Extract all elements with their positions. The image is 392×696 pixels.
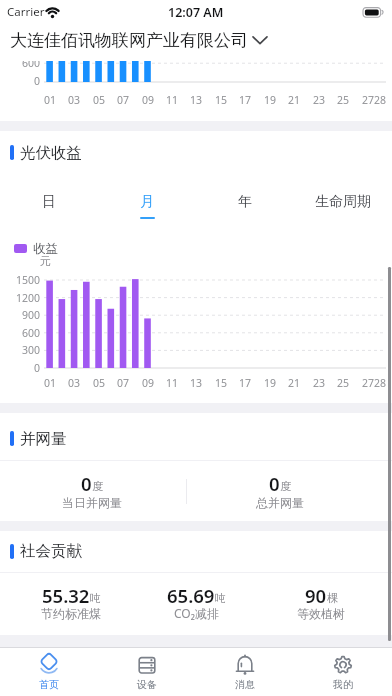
button[interactable]: 月 bbox=[98, 186, 196, 218]
staticText: 0 bbox=[81, 471, 92, 496]
button[interactable]: 65.69 bbox=[131, 581, 261, 609]
staticText: 90 bbox=[305, 583, 327, 608]
staticText: 1200 bbox=[16, 291, 41, 305]
staticText: 月 bbox=[140, 193, 154, 211]
staticText: 27 bbox=[362, 93, 375, 107]
staticText: 28 bbox=[374, 376, 387, 390]
staticText: 23 bbox=[313, 93, 326, 107]
staticText: 我的 bbox=[333, 678, 353, 691]
staticText: 17 bbox=[239, 376, 252, 390]
staticText: 15 bbox=[215, 376, 228, 390]
button[interactable] bbox=[294, 648, 392, 696]
button[interactable]: 55.32 bbox=[6, 581, 136, 609]
staticText: 度 bbox=[280, 479, 291, 493]
staticText: 12:07 AM bbox=[168, 4, 224, 21]
staticText: 05 bbox=[93, 376, 106, 390]
staticText: 生命周期 bbox=[315, 193, 371, 211]
staticText: 21 bbox=[288, 93, 301, 107]
staticText: 21 bbox=[288, 376, 301, 390]
staticText: 28 bbox=[374, 93, 387, 107]
staticText: 1500 bbox=[16, 273, 41, 287]
staticText: 大连佳佰讯物联网产业有限公司 bbox=[10, 30, 248, 51]
staticText: 收益 bbox=[33, 241, 58, 257]
staticText: 600 bbox=[22, 326, 41, 340]
button[interactable] bbox=[196, 648, 294, 696]
staticText: 09 bbox=[142, 93, 155, 107]
staticText: 0 bbox=[34, 361, 41, 375]
button[interactable]: 90 bbox=[256, 581, 386, 609]
staticText: 600 bbox=[22, 61, 41, 70]
button[interactable] bbox=[98, 648, 196, 696]
button[interactable]: 日 bbox=[0, 186, 98, 218]
staticText: 0 bbox=[269, 471, 280, 496]
staticText: 17 bbox=[239, 93, 252, 107]
staticText: 消息 bbox=[235, 678, 255, 691]
staticText: 25 bbox=[337, 93, 350, 107]
staticText: 19 bbox=[264, 93, 277, 107]
staticText: 13 bbox=[190, 376, 203, 390]
button[interactable] bbox=[0, 648, 98, 696]
staticText: 年 bbox=[238, 193, 252, 211]
staticText: 03 bbox=[68, 93, 81, 107]
staticText: 27 bbox=[362, 376, 375, 390]
staticText: 13 bbox=[190, 93, 203, 107]
staticText: 11 bbox=[166, 93, 179, 107]
staticText: 900 bbox=[22, 308, 41, 322]
staticText: 当日并网量 bbox=[62, 495, 122, 510]
staticText: 01 bbox=[44, 93, 57, 107]
staticText: Carrier bbox=[7, 4, 45, 20]
staticText: 15 bbox=[215, 93, 228, 107]
staticText: CO₂减排 bbox=[174, 605, 219, 621]
staticText: 等效植树 bbox=[297, 606, 345, 621]
staticText: 07 bbox=[117, 376, 130, 390]
staticText: 元 bbox=[40, 254, 51, 268]
button[interactable]: 生命周期 bbox=[294, 186, 392, 218]
staticText: 19 bbox=[264, 376, 277, 390]
staticText: 07 bbox=[117, 93, 130, 107]
staticText: 09 bbox=[142, 376, 155, 390]
staticText: 0 bbox=[34, 74, 41, 88]
staticText: 11 bbox=[166, 376, 179, 390]
staticText: 光伏收益 bbox=[20, 143, 82, 163]
button[interactable]: 0 bbox=[215, 469, 345, 497]
staticText: 05 bbox=[93, 93, 106, 107]
staticText: 03 bbox=[68, 376, 81, 390]
staticText: 首页 bbox=[39, 678, 59, 691]
staticText: 并网量 bbox=[20, 429, 67, 449]
staticText: 吨 bbox=[90, 591, 101, 605]
button[interactable]: 年 bbox=[196, 186, 294, 218]
staticText: 棵 bbox=[327, 591, 338, 605]
staticText: 55.32 bbox=[42, 583, 90, 608]
staticText: 65.69 bbox=[167, 583, 215, 608]
staticText: 吨 bbox=[215, 591, 226, 605]
staticText: 度 bbox=[92, 479, 103, 493]
button[interactable] bbox=[0, 26, 300, 54]
staticText: 01 bbox=[44, 376, 57, 390]
staticText: 日 bbox=[42, 193, 56, 211]
staticText: 300 bbox=[22, 343, 41, 357]
staticText: 节约标准煤 bbox=[41, 606, 101, 621]
staticText: 总并网量 bbox=[256, 495, 304, 510]
button[interactable]: 0 bbox=[27, 469, 157, 497]
staticText: 25 bbox=[337, 376, 350, 390]
staticText: 23 bbox=[313, 376, 326, 390]
staticText: 社会贡献 bbox=[20, 541, 82, 561]
staticText: 设备 bbox=[137, 678, 157, 691]
